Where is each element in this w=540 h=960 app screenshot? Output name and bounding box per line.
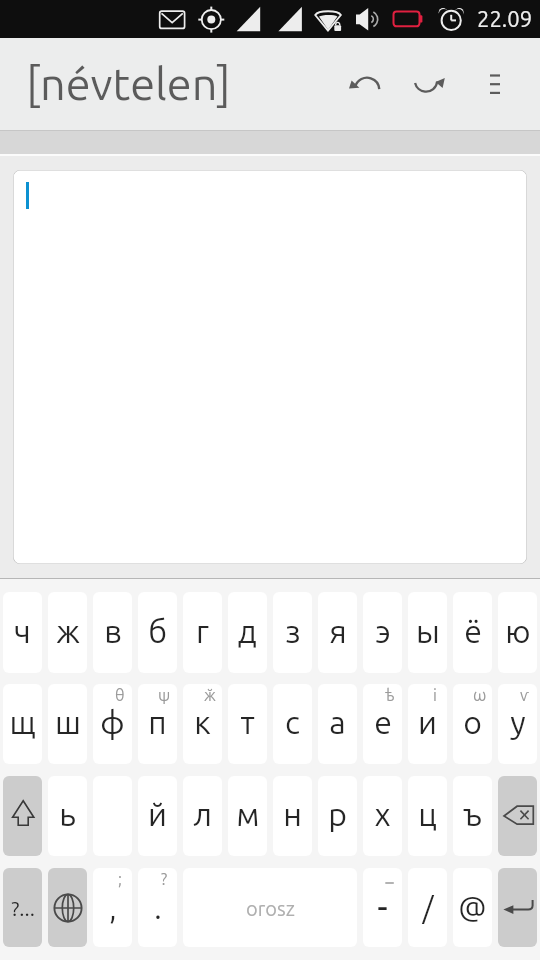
button[interactable]: ѣ: [363, 684, 402, 764]
button[interactable]: ӂ: [183, 684, 222, 764]
button[interactable]: Change language: [48, 868, 87, 947]
staticText: ф: [100, 704, 125, 740]
button[interactable]: т: [228, 684, 267, 764]
staticText: ?: [161, 870, 168, 888]
staticText: .: [154, 891, 162, 925]
staticText: б: [148, 613, 167, 649]
button[interactable]: н: [273, 776, 312, 856]
staticText: х: [374, 796, 391, 832]
button[interactable]: Undo: [340, 57, 396, 113]
staticText: ӂ: [204, 686, 216, 704]
button[interactable]: с: [273, 684, 312, 764]
button[interactable]: а: [318, 684, 357, 764]
staticText: orosz: [246, 897, 295, 919]
staticText: ж: [56, 613, 80, 649]
button[interactable]: orosz: [183, 868, 357, 947]
button[interactable]: ψ: [138, 684, 177, 764]
button[interactable]: [13, 170, 527, 564]
staticText: к: [194, 704, 211, 740]
button[interactable]: й: [138, 776, 177, 856]
button[interactable]: б: [138, 592, 177, 673]
staticText: у: [510, 704, 526, 740]
button[interactable]: з: [273, 592, 312, 673]
staticText: щ: [9, 704, 36, 740]
staticText: з: [285, 613, 301, 649]
staticText: т: [240, 704, 255, 740]
button[interactable]: Redo: [406, 61, 462, 117]
button[interactable]: ж: [48, 592, 87, 673]
staticText: а: [329, 704, 346, 740]
button[interactable]: ?...: [3, 868, 42, 947]
button[interactable]: Enter: [498, 868, 537, 947]
button[interactable]: м: [228, 776, 267, 856]
button[interactable]: Backspace: [498, 776, 537, 856]
staticText: и: [418, 704, 437, 740]
staticText: с: [285, 704, 300, 740]
button[interactable]: ц: [408, 776, 447, 856]
staticText: н: [283, 796, 302, 832]
staticText: г: [196, 613, 209, 649]
staticText: й: [148, 796, 167, 832]
staticText: р: [328, 796, 347, 832]
staticText: ?...: [11, 896, 35, 920]
staticText: @: [458, 890, 487, 924]
staticText: [névtelen]: [26, 58, 231, 108]
staticText: ё: [464, 613, 482, 649]
staticText: я: [329, 613, 347, 649]
staticText: ψ: [158, 686, 171, 704]
button[interactable]: Hyphen: [363, 868, 402, 947]
staticText: ч: [14, 613, 31, 649]
button[interactable]: щ: [3, 684, 42, 764]
button[interactable]: і: [408, 684, 447, 764]
staticText: ѵ: [520, 686, 529, 704]
button[interactable]: @: [453, 868, 492, 947]
button[interactable]: э: [363, 592, 402, 673]
button[interactable]: ё: [453, 592, 492, 673]
button[interactable]: /: [408, 868, 447, 947]
staticText: п: [148, 704, 167, 740]
staticText: ц: [418, 796, 437, 832]
button[interactable]: ю: [498, 592, 537, 673]
button[interactable]: More options: [469, 58, 521, 110]
button[interactable]: р: [318, 776, 357, 856]
button[interactable]: ?: [138, 868, 177, 947]
button[interactable]: г: [183, 592, 222, 673]
button[interactable]: ѵ: [498, 684, 537, 764]
staticText: θ: [115, 686, 125, 704]
button[interactable]: л: [183, 776, 222, 856]
button[interactable]: ы: [408, 592, 447, 673]
staticText: ь: [59, 796, 76, 832]
staticText: е: [374, 704, 392, 740]
staticText: м: [236, 796, 260, 832]
staticText: ;: [118, 870, 122, 888]
staticText: /: [422, 890, 434, 924]
staticText: ъ: [463, 796, 482, 832]
button[interactable]: ω: [453, 684, 492, 764]
staticText: о: [463, 704, 482, 740]
button[interactable]: θ: [93, 684, 132, 764]
staticText: ѣ: [385, 686, 395, 704]
staticText: ю: [505, 613, 531, 649]
staticText: э: [375, 613, 391, 649]
staticText: ω: [473, 686, 487, 704]
staticText: ,: [109, 891, 117, 925]
staticText: 22.09: [477, 6, 533, 31]
button[interactable]: ;: [93, 868, 132, 947]
staticText: д: [238, 613, 257, 649]
button[interactable]: ч: [3, 592, 42, 673]
staticText: і: [433, 686, 437, 704]
staticText: ы: [416, 613, 440, 649]
staticText: л: [193, 796, 212, 832]
button[interactable]: ь: [48, 776, 87, 856]
button[interactable]: ъ: [453, 776, 492, 856]
button[interactable]: я: [318, 592, 357, 673]
button[interactable]: х: [363, 776, 402, 856]
button[interactable]: ш: [48, 684, 87, 764]
staticText: в: [104, 613, 122, 649]
button[interactable]: Shift: [3, 776, 42, 856]
staticText: ш: [55, 704, 81, 740]
button[interactable]: д: [228, 592, 267, 673]
button[interactable]: в: [93, 592, 132, 673]
